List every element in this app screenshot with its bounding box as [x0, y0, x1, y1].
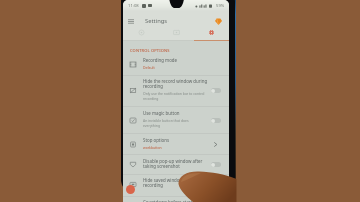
staticText: Stop options — [143, 137, 170, 143]
button[interactable]: Premium — [212, 15, 224, 27]
staticText: An invisible button that does everything — [143, 118, 189, 128]
staticText: 11:08 — [128, 3, 139, 9]
staticText: Only use the notification bar to control… — [143, 91, 214, 101]
button[interactable]: Disable pop-up window after taking scree… — [123, 155, 229, 174]
button[interactable]: Videos — [159, 28, 194, 37]
staticText: Use magic button — [143, 110, 180, 116]
staticText: Settings — [145, 17, 168, 25]
button[interactable]: Hide saved window after recording — [123, 174, 229, 195]
button[interactable]: Settings — [194, 28, 229, 37]
staticText: CONTROL OPTIONS — [130, 48, 170, 53]
staticText: Default — [143, 65, 155, 70]
staticText: Countdown before start recording — [143, 199, 214, 202]
button[interactable]: Stop options — [123, 134, 229, 154]
button[interactable]: Countdown before start recording — [123, 196, 229, 202]
staticText: Disable pop-up window after taking scree… — [143, 158, 214, 169]
staticText: Hide the record window during recording — [143, 78, 214, 89]
staticText: Hide saved window after recording — [143, 177, 214, 188]
button[interactable]: Menu — [125, 15, 137, 27]
staticText: 59% — [216, 3, 225, 9]
staticText: Recording mode — [143, 57, 178, 63]
staticText: workbutton — [143, 145, 162, 150]
button[interactable]: Hide the record window during recording — [123, 75, 229, 107]
button[interactable]: Recording mode — [123, 54, 229, 75]
button[interactable]: Use magic button — [123, 107, 229, 133]
button[interactable]: Record — [126, 185, 135, 194]
